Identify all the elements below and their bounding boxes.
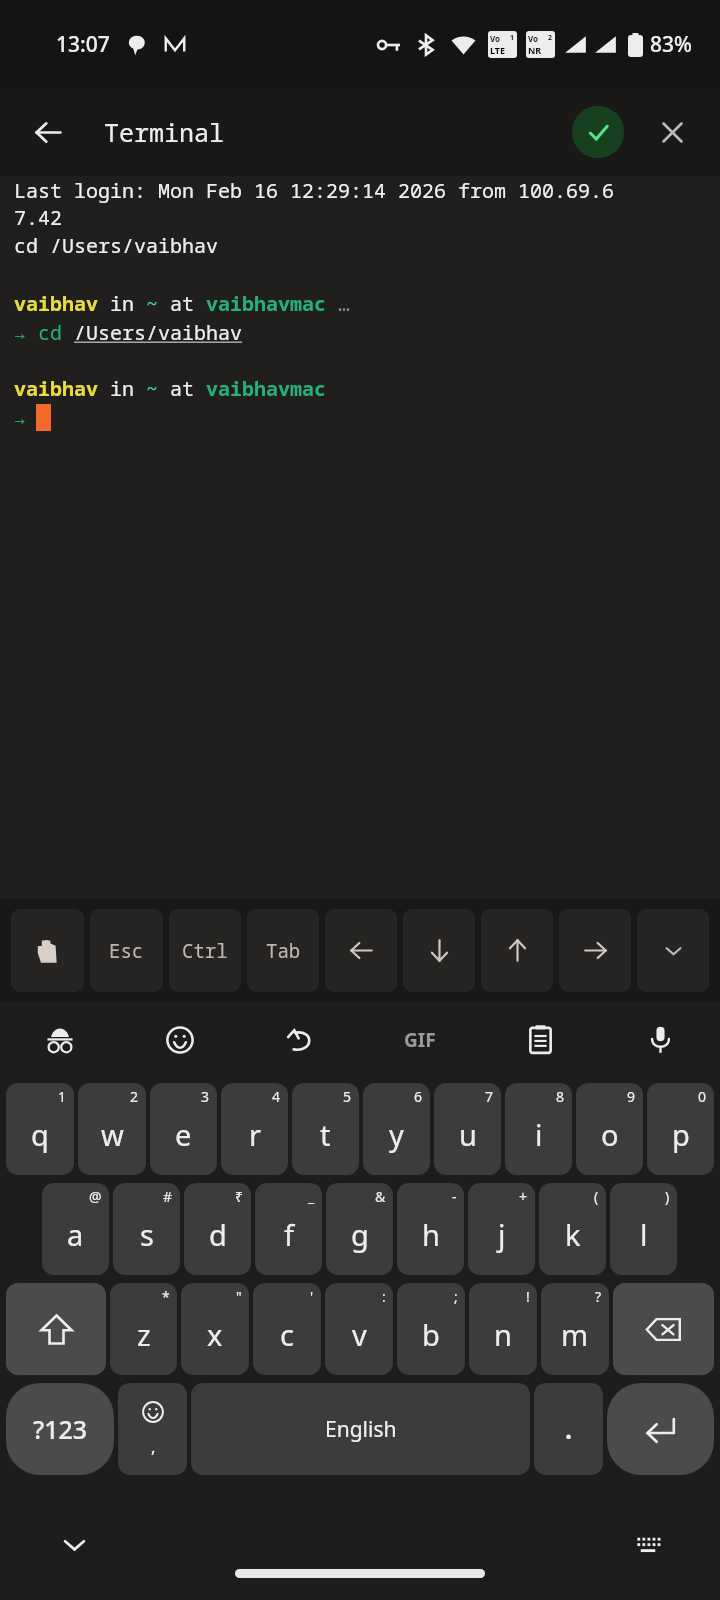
staticText: 9	[627, 1087, 636, 1106]
staticText: Esc	[109, 938, 144, 964]
staticText: cd /Users/vaibhav	[14, 232, 218, 259]
button[interactable]: Scroll lock	[11, 909, 84, 992]
button[interactable]: English	[191, 1383, 530, 1475]
staticText: '	[310, 1287, 314, 1306]
button[interactable]: Voice input	[600, 1002, 720, 1077]
staticText: 8	[556, 1087, 565, 1106]
button[interactable]: Back	[22, 106, 74, 158]
staticText: ,	[151, 1435, 156, 1458]
staticText: Vo	[490, 33, 501, 44]
button[interactable]: r	[221, 1083, 288, 1175]
button[interactable]: e	[150, 1083, 217, 1175]
staticText: 4	[272, 1087, 281, 1106]
staticText: o	[601, 1115, 619, 1154]
staticText: j	[498, 1215, 506, 1254]
staticText: 7.42	[14, 204, 62, 231]
button[interactable]: Emoji	[120, 1002, 240, 1077]
staticText: Terminal	[104, 115, 225, 149]
staticText: l	[640, 1215, 648, 1254]
staticText: p	[672, 1115, 690, 1154]
button[interactable]: m	[541, 1283, 609, 1375]
button[interactable]: s	[113, 1183, 180, 1275]
button[interactable]: Backspace	[613, 1283, 714, 1375]
button[interactable]: x	[181, 1283, 249, 1375]
button[interactable]: f	[255, 1183, 322, 1275]
staticText: _	[308, 1187, 315, 1206]
button[interactable]: p	[647, 1083, 714, 1175]
button[interactable]: Down	[403, 909, 475, 992]
staticText: →	[14, 404, 26, 431]
staticText: 2	[548, 33, 553, 43]
staticText: English	[325, 1415, 397, 1444]
staticText: y	[389, 1115, 404, 1154]
button[interactable]: d	[184, 1183, 251, 1275]
staticText: &	[375, 1187, 386, 1206]
staticText: 1	[510, 33, 515, 43]
button[interactable]: n	[469, 1283, 537, 1375]
button[interactable]: y	[363, 1083, 430, 1175]
staticText: 13:07	[56, 30, 110, 59]
button[interactable]: .	[534, 1383, 603, 1475]
button[interactable]: GIF	[360, 1002, 480, 1077]
staticText: +	[519, 1187, 528, 1206]
button[interactable]: b	[397, 1283, 465, 1375]
button[interactable]: j	[468, 1183, 535, 1275]
button[interactable]: Session connected	[572, 106, 624, 158]
staticText: e	[175, 1115, 192, 1154]
staticText: Vo	[528, 33, 539, 44]
button[interactable]: g	[326, 1183, 393, 1275]
button[interactable]: t	[292, 1083, 359, 1175]
button[interactable]: u	[434, 1083, 501, 1175]
button[interactable]: i	[505, 1083, 572, 1175]
button[interactable]: ?123	[6, 1383, 114, 1475]
button[interactable]: z	[110, 1283, 177, 1375]
button[interactable]: Emoji	[118, 1383, 187, 1475]
staticText: ?123	[33, 1412, 88, 1446]
button[interactable]: Close	[646, 106, 698, 158]
staticText: u	[459, 1115, 477, 1154]
button[interactable]: Hide keyboard	[52, 1522, 96, 1566]
staticText: 3	[201, 1087, 210, 1106]
button[interactable]: Right	[559, 909, 631, 992]
button[interactable]: Incognito	[0, 1002, 120, 1077]
button[interactable]: o	[576, 1083, 643, 1175]
button[interactable]: Left	[325, 909, 397, 992]
staticText: 83%	[650, 30, 692, 59]
button[interactable]: Ctrl	[169, 909, 241, 992]
button[interactable]: w	[78, 1083, 146, 1175]
staticText: w	[101, 1115, 124, 1154]
button[interactable]: v	[325, 1283, 393, 1375]
button[interactable]: Esc	[90, 909, 163, 992]
staticText: a	[67, 1215, 84, 1254]
button[interactable]: More keys	[637, 909, 709, 992]
button[interactable]: Enter	[607, 1383, 714, 1475]
staticText: ?	[595, 1287, 602, 1306]
staticText: #	[163, 1187, 173, 1206]
staticText: c	[280, 1315, 294, 1354]
button[interactable]: Switch keyboard	[626, 1522, 670, 1566]
button[interactable]: Up	[481, 909, 553, 992]
button[interactable]: Undo	[240, 1002, 360, 1077]
staticText: NR	[528, 44, 542, 56]
staticText: v	[352, 1315, 367, 1354]
button[interactable]: Tab	[247, 909, 319, 992]
button[interactable]: c	[253, 1283, 321, 1375]
staticText: i	[535, 1115, 543, 1154]
staticText: → cd /Users/vaibhav	[14, 319, 242, 346]
staticText: @	[89, 1187, 102, 1206]
staticText: vaibhav in ~ at vaibhavmac	[14, 375, 326, 402]
staticText: b	[422, 1315, 440, 1354]
button[interactable]: Shift	[6, 1283, 106, 1375]
staticText: t	[320, 1115, 331, 1154]
staticText: 5	[343, 1087, 352, 1106]
staticText: .	[565, 1412, 573, 1446]
staticText: f	[284, 1215, 294, 1254]
button[interactable]: l	[610, 1183, 677, 1275]
staticText: Last login: Mon Feb 16 12:29:14 2026 fro…	[14, 177, 614, 204]
button[interactable]: h	[397, 1183, 464, 1275]
button[interactable]: q	[6, 1083, 74, 1175]
button[interactable]: a	[42, 1183, 109, 1275]
staticText: 7	[485, 1087, 494, 1106]
button[interactable]: k	[539, 1183, 606, 1275]
button[interactable]: Clipboard	[480, 1002, 600, 1077]
